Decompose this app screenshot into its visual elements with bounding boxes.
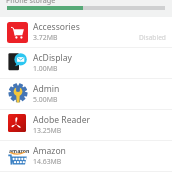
staticText: 5.00MB (33, 95, 58, 104)
button[interactable]: Amazon app icon (0, 141, 172, 172)
button[interactable]: Accessories app icon (0, 17, 172, 48)
staticText: AcDisplay (33, 52, 72, 64)
staticText: Amazon (33, 145, 66, 157)
staticText: 14.63MB (33, 157, 62, 166)
staticText: Admin (33, 83, 60, 95)
staticText: Phone storage (6, 0, 56, 5)
other: AcDisplay app icon (7, 53, 28, 74)
button[interactable]: AcDisplay app icon (0, 48, 172, 79)
button[interactable]: Adobe Reader app icon (0, 110, 172, 141)
staticText: 3.72MB (33, 33, 58, 42)
other: Accessories app icon (7, 22, 28, 43)
staticText: 13.25MB (33, 126, 62, 135)
button[interactable]: Phone storage (0, 0, 172, 17)
staticText: Adobe Reader (33, 114, 91, 126)
staticText: amazon (9, 147, 30, 154)
other: Amazon app icon (7, 146, 28, 167)
staticText: Disabled (139, 33, 166, 42)
staticText: Accessories (33, 21, 80, 33)
other: Adobe Reader app icon (8, 114, 26, 132)
staticText: 1.00MB (33, 64, 58, 73)
other: Admin app icon (7, 84, 28, 105)
button[interactable]: Admin app icon (0, 79, 172, 110)
